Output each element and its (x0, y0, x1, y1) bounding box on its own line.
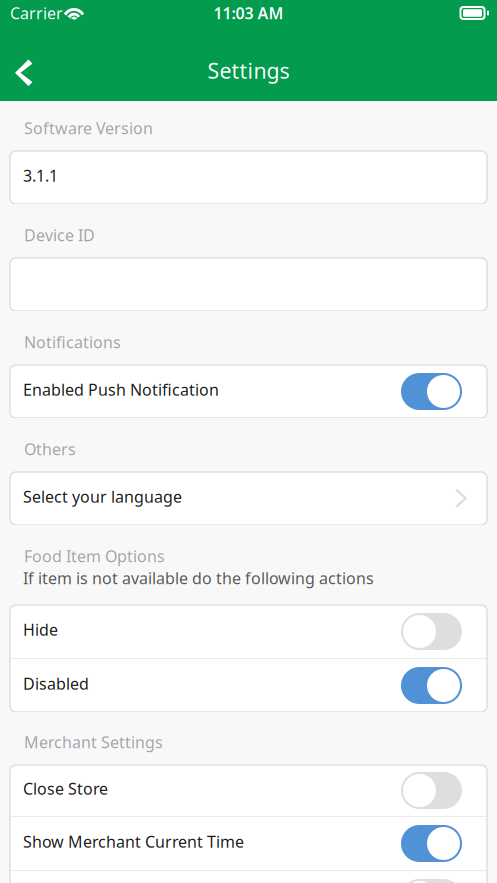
staticText: Merchant Settings (24, 731, 163, 753)
staticText: Carrier (10, 2, 63, 24)
staticText: Show Merchant Current Time (23, 831, 244, 852)
button[interactable]: Show Merchant Current Time (10, 817, 487, 870)
staticText: 11:03 AM (213, 2, 283, 24)
button[interactable]: Disabled (10, 659, 487, 712)
button[interactable]: Hide (10, 605, 487, 658)
button[interactable]: Enabled Push Notification (10, 365, 487, 418)
staticText: Settings (207, 56, 289, 85)
staticText: Software Version (24, 117, 153, 139)
staticText: If item is not available do the followin… (23, 567, 374, 589)
staticText: Others (24, 438, 76, 460)
button[interactable]: Auto Accept Orders (10, 871, 487, 883)
staticText: 3.1.1 (23, 165, 58, 186)
staticText: Food Item Options (24, 545, 165, 567)
button[interactable]: Close Store (10, 765, 487, 816)
staticText: Enabled Push Notification (23, 379, 219, 400)
staticText: Close Store (23, 778, 108, 799)
staticText: Hide (23, 619, 58, 640)
staticText: Disabled (23, 673, 89, 694)
button[interactable]: Select your language (10, 472, 487, 525)
button[interactable]: Back (0, 34, 53, 93)
staticText: Select your language (23, 486, 182, 507)
staticText: Notifications (24, 331, 121, 353)
staticText: Device ID (24, 224, 95, 246)
